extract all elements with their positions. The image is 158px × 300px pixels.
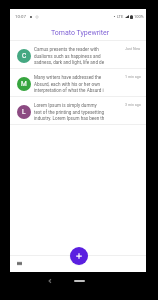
staticText: Camus presents the reader with dualisms … xyxy=(34,47,105,65)
staticText: Tomato Typewriter xyxy=(51,29,110,37)
staticText: 10:07 xyxy=(15,14,26,19)
staticText: Many writers have addressed the Absurd, … xyxy=(34,75,105,93)
staticText: C xyxy=(22,52,27,60)
button[interactable]: M xyxy=(10,69,146,97)
staticText: Lorem Ipsum is simply dummy text of the … xyxy=(34,103,105,121)
staticText: M xyxy=(21,80,27,88)
staticText: 1 min ago xyxy=(125,75,141,79)
button[interactable]: Back xyxy=(46,277,54,285)
staticText: L xyxy=(22,108,26,116)
button[interactable]: Menu xyxy=(13,257,25,269)
button[interactable]: C xyxy=(10,41,146,69)
staticText: Just Now xyxy=(125,47,141,51)
staticText: 100% xyxy=(134,14,144,19)
staticText: LTE xyxy=(117,14,124,19)
button[interactable]: L xyxy=(10,97,146,125)
staticText: 3 min ago xyxy=(125,103,141,107)
button[interactable]: Add note xyxy=(70,247,88,265)
